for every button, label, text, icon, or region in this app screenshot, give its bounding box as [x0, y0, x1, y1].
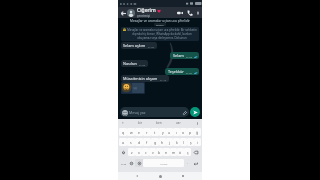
button[interactable]: Settings [135, 159, 143, 167]
staticText: t [154, 130, 156, 135]
button[interactable]: a [119, 138, 127, 146]
button[interactable]: n [163, 148, 170, 156]
button[interactable]: Enter [191, 159, 201, 167]
staticText: v [152, 150, 154, 155]
button[interactable]: t [151, 128, 159, 136]
staticText: 21:05 [186, 55, 193, 58]
button[interactable]: Back [119, 9, 127, 17]
button[interactable]: Home [156, 172, 164, 180]
staticText: s [130, 140, 132, 145]
staticText: * [122, 122, 124, 126]
button[interactable]: Selam aşkım [123, 43, 155, 48]
staticText: k [176, 140, 178, 145]
staticText: w [130, 130, 133, 135]
staticText: g [154, 140, 157, 145]
staticText: f [146, 140, 148, 145]
staticText: 21:06 [139, 63, 146, 66]
staticText: ö [179, 150, 182, 155]
button[interactable]: h [159, 138, 166, 146]
button[interactable]: ç [184, 148, 191, 156]
button[interactable]: l [180, 138, 187, 146]
staticText: b [158, 150, 161, 155]
staticText: var [176, 121, 181, 125]
button[interactable]: s [127, 138, 135, 146]
button[interactable]: z [128, 148, 135, 156]
button[interactable]: m [170, 148, 177, 156]
staticText: . [187, 161, 188, 165]
staticText: ı [176, 130, 177, 135]
button[interactable]: c [142, 148, 149, 156]
button[interactable]: e [135, 128, 143, 136]
staticText: e [138, 130, 140, 135]
staticText: r [146, 130, 148, 135]
button[interactable]: More options [195, 10, 201, 16]
staticText: ?123 [121, 162, 127, 165]
button[interactable]: o [180, 128, 187, 136]
button[interactable]: Send [190, 107, 200, 117]
staticText: u [168, 130, 171, 135]
staticText: Bugün [156, 23, 164, 26]
button[interactable]: y [159, 128, 166, 136]
button[interactable]: Shift [119, 148, 128, 156]
staticText: Selam [173, 53, 184, 58]
button[interactable]: Nasılsın [123, 61, 146, 66]
staticText: 21:10 [160, 78, 167, 81]
staticText: ğ [196, 130, 199, 135]
button[interactable]: v [149, 148, 156, 156]
staticText: 21:04 [148, 45, 155, 48]
button[interactable]: Symbols [119, 159, 128, 167]
button[interactable]: q [119, 128, 127, 136]
button[interactable]: Call [185, 8, 195, 18]
staticText: Türkçe [160, 162, 168, 165]
button[interactable]: Emoji [128, 159, 135, 167]
button[interactable]: k [173, 138, 180, 146]
staticText: l [183, 140, 184, 145]
button[interactable]: Clipboard [120, 121, 125, 126]
staticText: y [162, 130, 164, 135]
staticText: Mesajlar ve aramalar uçtan uca şifrelidi… [121, 19, 199, 23]
button[interactable]: Recents [179, 172, 187, 180]
staticText: Selam aşkım [123, 43, 146, 48]
button[interactable]: g [151, 138, 159, 146]
button[interactable]: Video call [175, 8, 185, 18]
button[interactable]: x [135, 148, 142, 156]
button[interactable]: d [135, 138, 143, 146]
staticText: d [138, 140, 141, 145]
button[interactable]: Space [143, 159, 184, 167]
staticText: ş [190, 140, 192, 145]
staticText: ç [187, 150, 189, 155]
button[interactable]: r [143, 128, 151, 136]
button[interactable]: w [127, 128, 135, 136]
button[interactable]: ı [173, 128, 180, 136]
button[interactable]: ö [177, 148, 184, 156]
staticText: h [161, 140, 164, 145]
button[interactable]: More [195, 121, 200, 126]
staticText: c [145, 150, 147, 155]
button[interactable]: Müsaitmisin akşam [123, 76, 167, 81]
staticText: Teşekkür [168, 69, 184, 74]
button[interactable]: f [143, 138, 151, 146]
staticText: Nasılsın [123, 61, 137, 66]
staticText: m [172, 150, 176, 155]
button[interactable]: Teşekkür [168, 69, 197, 74]
button[interactable]: Selam [173, 53, 197, 58]
button[interactable]: p [187, 128, 194, 136]
button[interactable]: Mesaj yaz [121, 107, 187, 117]
staticText: Mesaj yaz [129, 110, 146, 115]
button[interactable]: i [194, 138, 201, 146]
staticText: çevrimiçi [137, 14, 151, 18]
staticText: a [122, 140, 124, 145]
staticText: z [131, 150, 133, 155]
staticText: j [169, 140, 170, 145]
staticText: x [138, 150, 140, 155]
button[interactable]: ş [187, 138, 194, 146]
button[interactable]: Backspace [191, 148, 201, 156]
button[interactable]: b [156, 148, 163, 156]
button[interactable]: j [166, 138, 173, 146]
button[interactable]: ğ [194, 128, 201, 136]
button[interactable]: u [166, 128, 173, 136]
button[interactable]: Attach [181, 109, 187, 115]
staticText: 21:07 [186, 71, 193, 74]
button[interactable]: Back [133, 172, 141, 180]
